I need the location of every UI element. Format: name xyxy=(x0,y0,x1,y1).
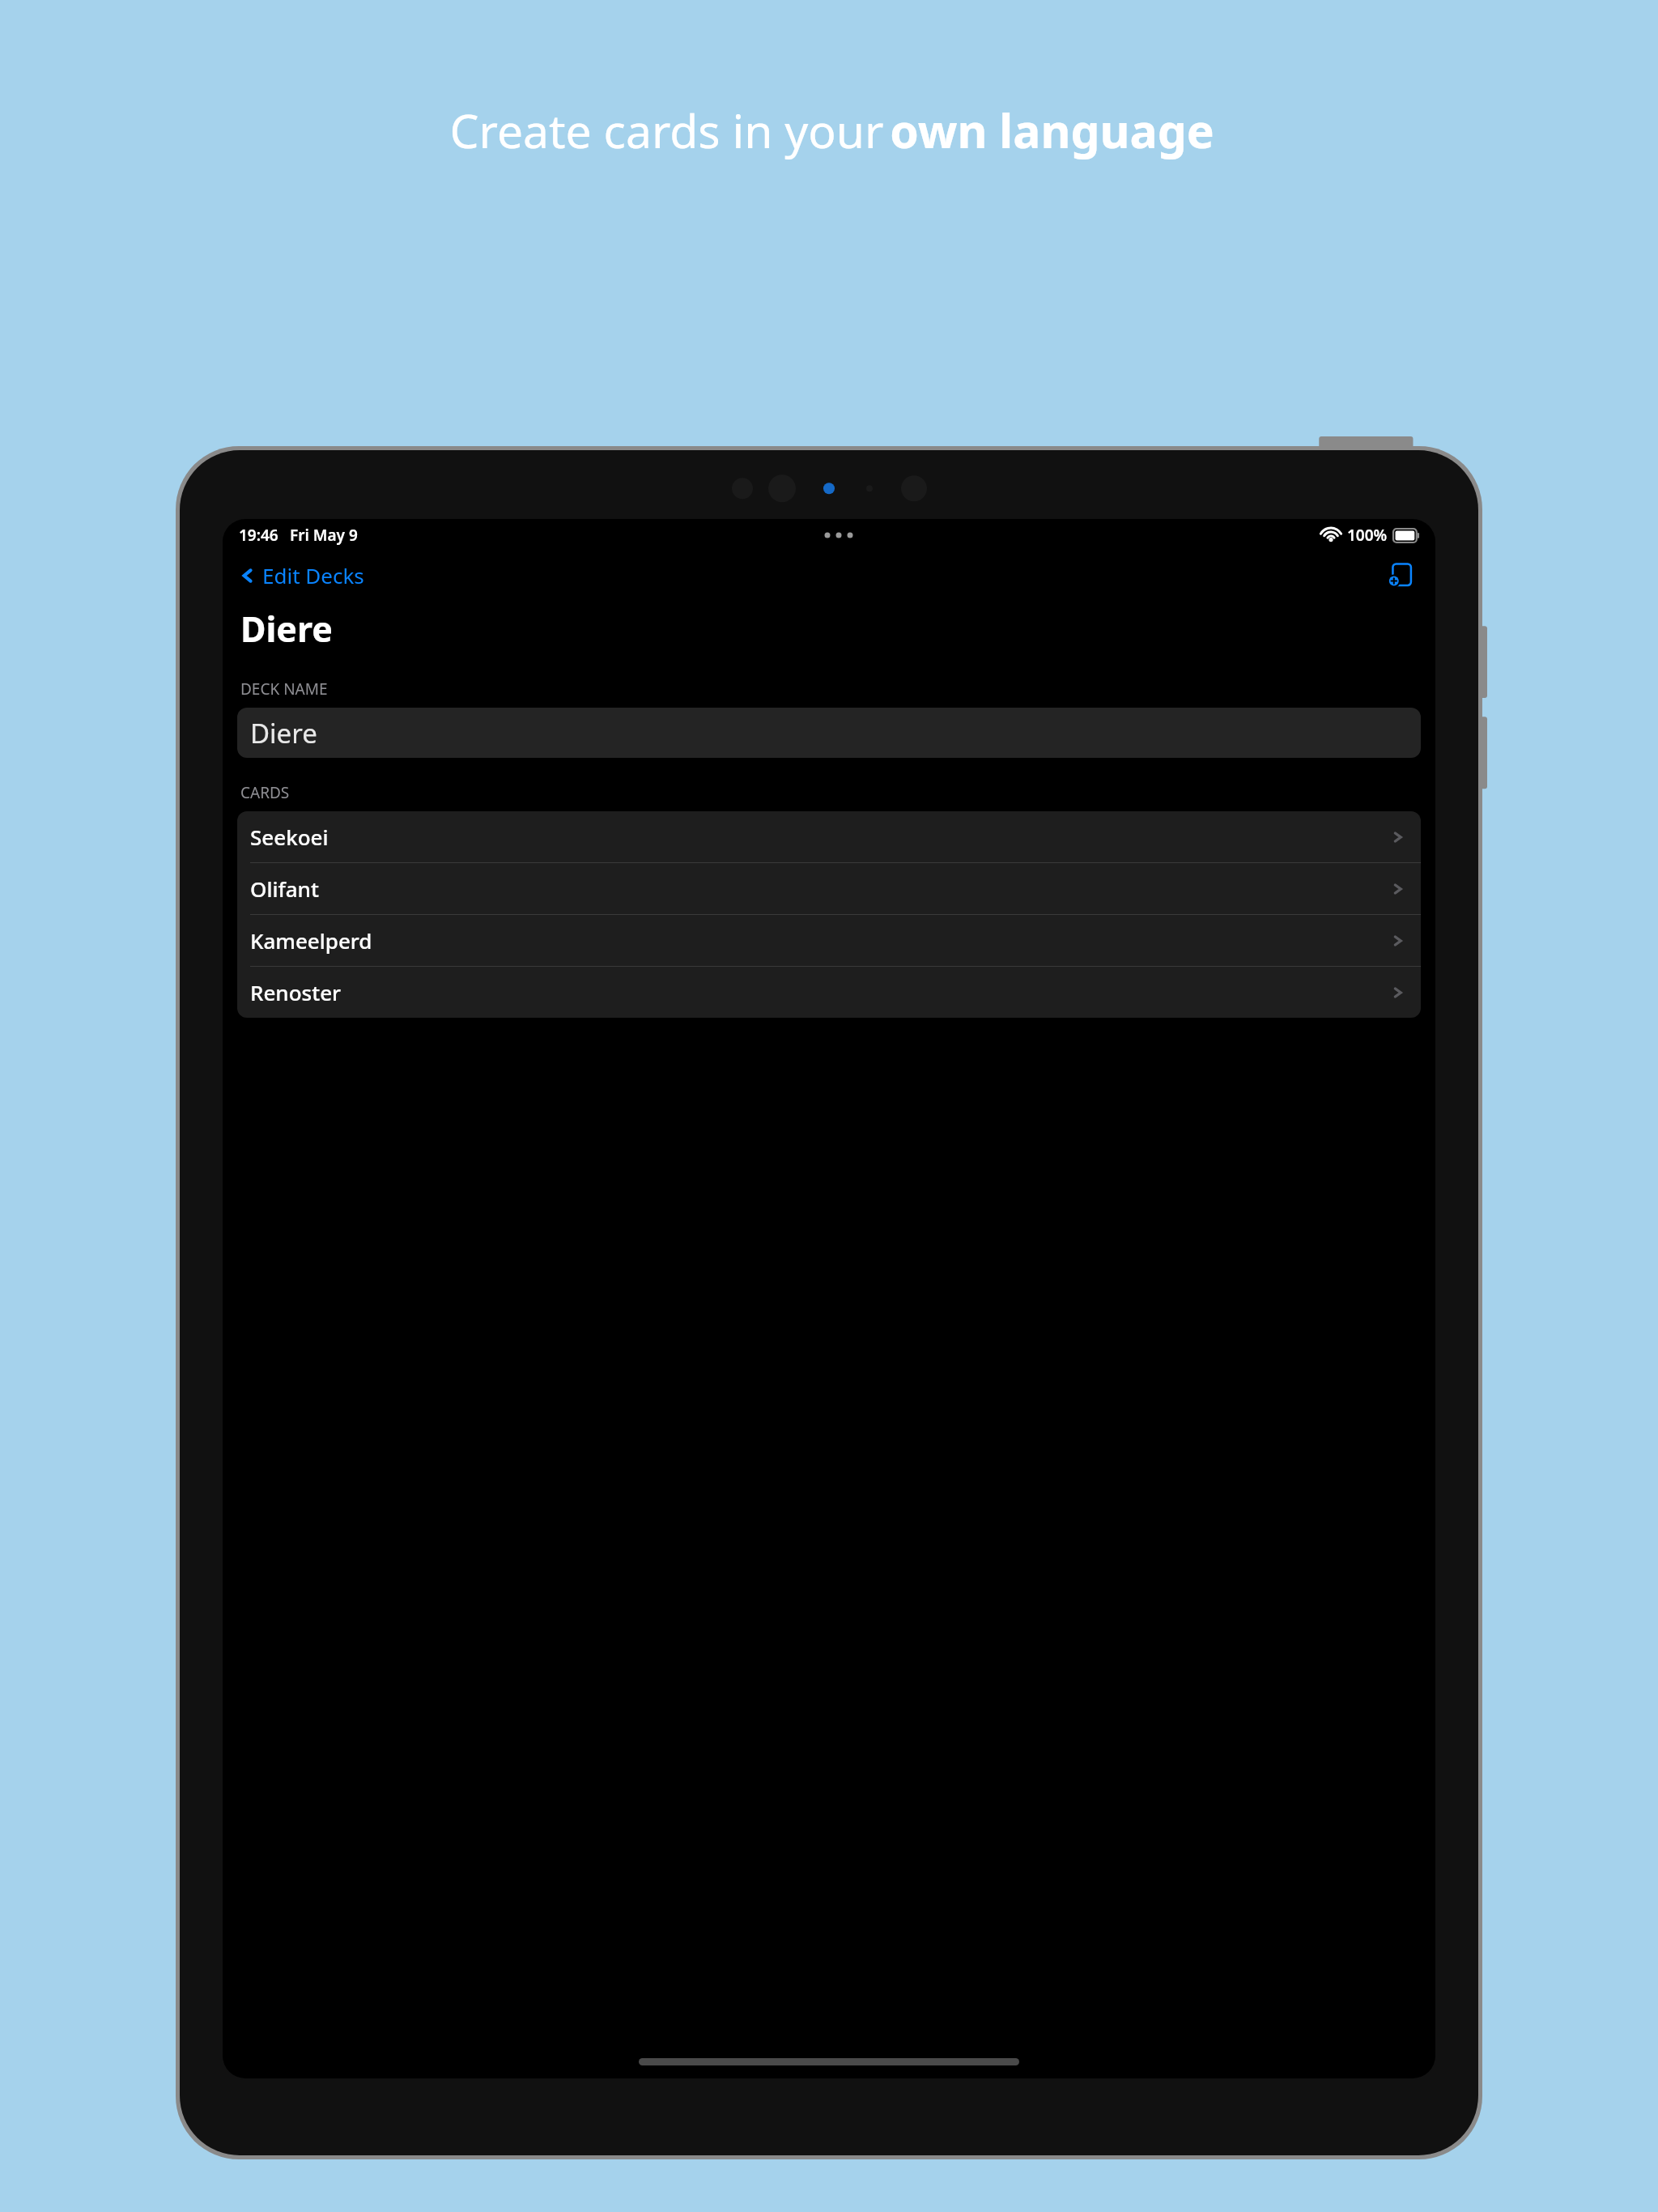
staticText: Seekoei xyxy=(250,823,329,851)
staticText: CARDS xyxy=(240,782,290,803)
button[interactable]: Kameelperd xyxy=(237,915,1421,966)
button[interactable]: Add card xyxy=(1384,556,1421,593)
staticText: Edit Decks xyxy=(262,561,364,589)
staticText: Create cards in your xyxy=(444,99,890,162)
button[interactable]: Renoster xyxy=(237,967,1421,1018)
staticText: Diere xyxy=(240,605,334,653)
staticText: 100% xyxy=(1347,525,1388,546)
staticText: Renoster xyxy=(250,978,342,1006)
staticText: Olifant xyxy=(250,874,319,903)
button[interactable]: Diere xyxy=(237,708,1421,758)
staticText: Kameelperd xyxy=(250,926,372,955)
button[interactable]: Olifant xyxy=(237,863,1421,914)
button[interactable]: Seekoei xyxy=(237,811,1421,862)
staticText: 19:46 xyxy=(239,525,278,546)
staticText: Fri May 9 xyxy=(290,525,358,546)
staticText: DECK NAME xyxy=(240,678,328,700)
staticText: own language xyxy=(890,99,1214,162)
staticText: Diere xyxy=(250,715,317,751)
button[interactable]: Edit Decks xyxy=(237,556,366,594)
